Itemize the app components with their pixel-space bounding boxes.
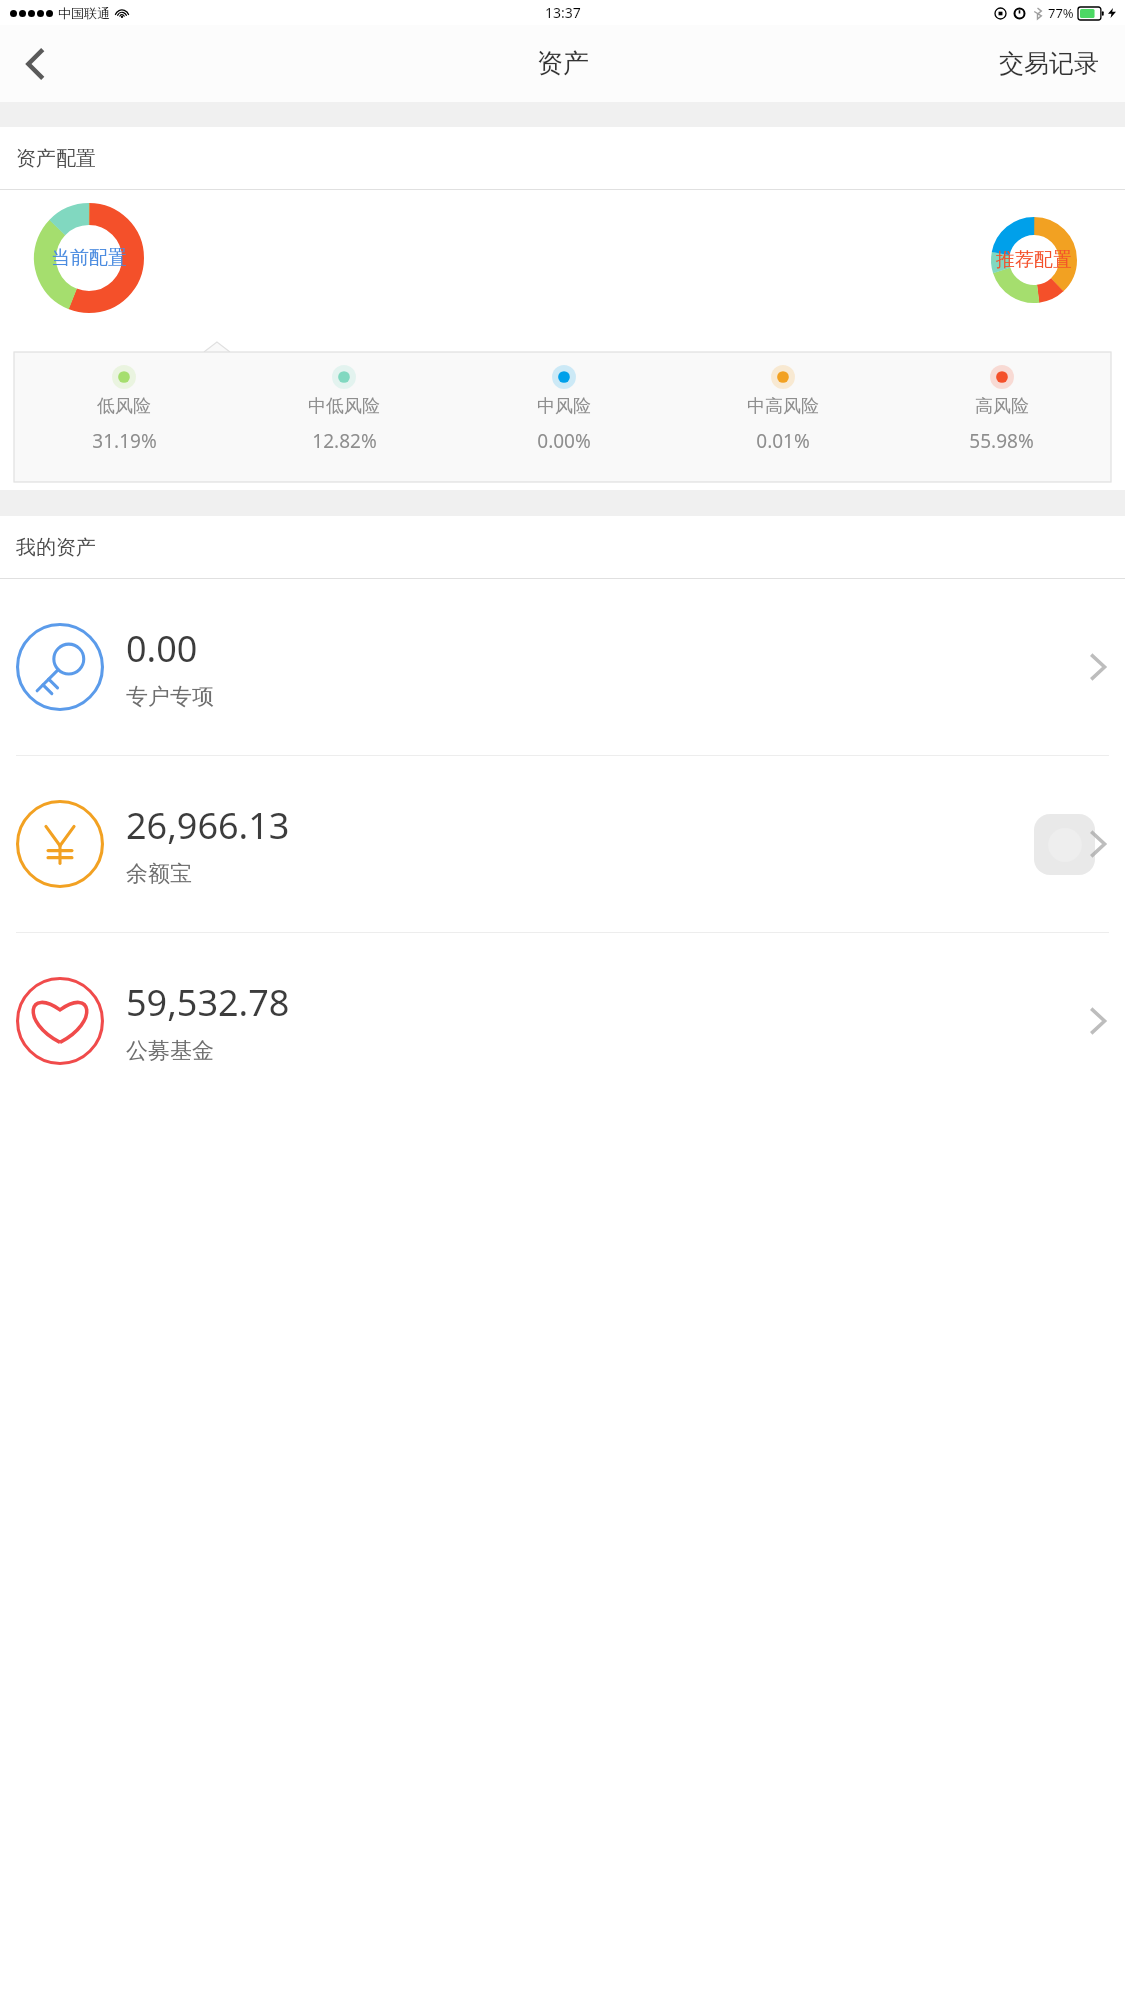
button[interactable]: 中低风险: [234, 364, 454, 454]
staticText: 当前配置: [51, 246, 127, 270]
staticText: 公募基金: [126, 1037, 214, 1065]
button[interactable]: 辅助触控: [1034, 814, 1095, 875]
staticText: 31.19%: [92, 428, 157, 454]
button[interactable]: 0.00: [0, 579, 1125, 755]
staticText: 低风险: [97, 395, 151, 418]
staticText: 55.98%: [969, 428, 1034, 454]
button[interactable]: 当前配置: [34, 203, 144, 313]
staticText: 0.00%: [537, 428, 591, 454]
button[interactable]: 中风险: [454, 364, 673, 454]
button[interactable]: 中高风险: [673, 364, 892, 454]
staticText: 交易记录: [999, 48, 1099, 79]
staticText: 26,966.13: [126, 801, 290, 850]
staticText: 77%: [1048, 4, 1074, 22]
button[interactable]: 59,532.78: [0, 933, 1125, 1109]
button[interactable]: 推荐配置: [991, 217, 1077, 303]
button[interactable]: 低风险: [14, 364, 234, 454]
staticText: 中高风险: [747, 395, 819, 418]
staticText: 12.82%: [312, 428, 377, 454]
staticText: 13:37: [545, 3, 581, 22]
staticText: 资产配置: [16, 146, 96, 171]
staticText: 中国联通: [58, 5, 110, 21]
button[interactable]: 26,966.13: [0, 756, 1125, 932]
button[interactable]: 高风险: [892, 364, 1111, 454]
staticText: 中风险: [537, 395, 591, 418]
staticText: 余额宝: [126, 860, 192, 888]
staticText: 0.00: [126, 624, 198, 673]
staticText: 专户专项: [126, 683, 214, 711]
button[interactable]: 交易记录: [993, 40, 1105, 87]
button[interactable]: 返回: [0, 25, 70, 102]
staticText: 我的资产: [16, 535, 96, 560]
staticText: 中低风险: [308, 395, 380, 418]
staticText: 资产: [537, 47, 589, 80]
staticText: 0.01%: [756, 428, 810, 454]
staticText: 59,532.78: [126, 978, 290, 1027]
staticText: 推荐配置: [996, 248, 1072, 272]
staticText: 高风险: [975, 395, 1029, 418]
